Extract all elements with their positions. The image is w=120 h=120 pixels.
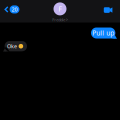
staticText: F <box>58 4 61 13</box>
staticText: Freddie <box>52 17 65 22</box>
staticText: 20 <box>11 6 17 13</box>
staticText: Oke <box>7 43 17 50</box>
button[interactable]: FaceTime video call <box>104 1 120 13</box>
staticText: Pull up <box>92 29 114 37</box>
button[interactable]: Back <box>0 0 19 13</box>
